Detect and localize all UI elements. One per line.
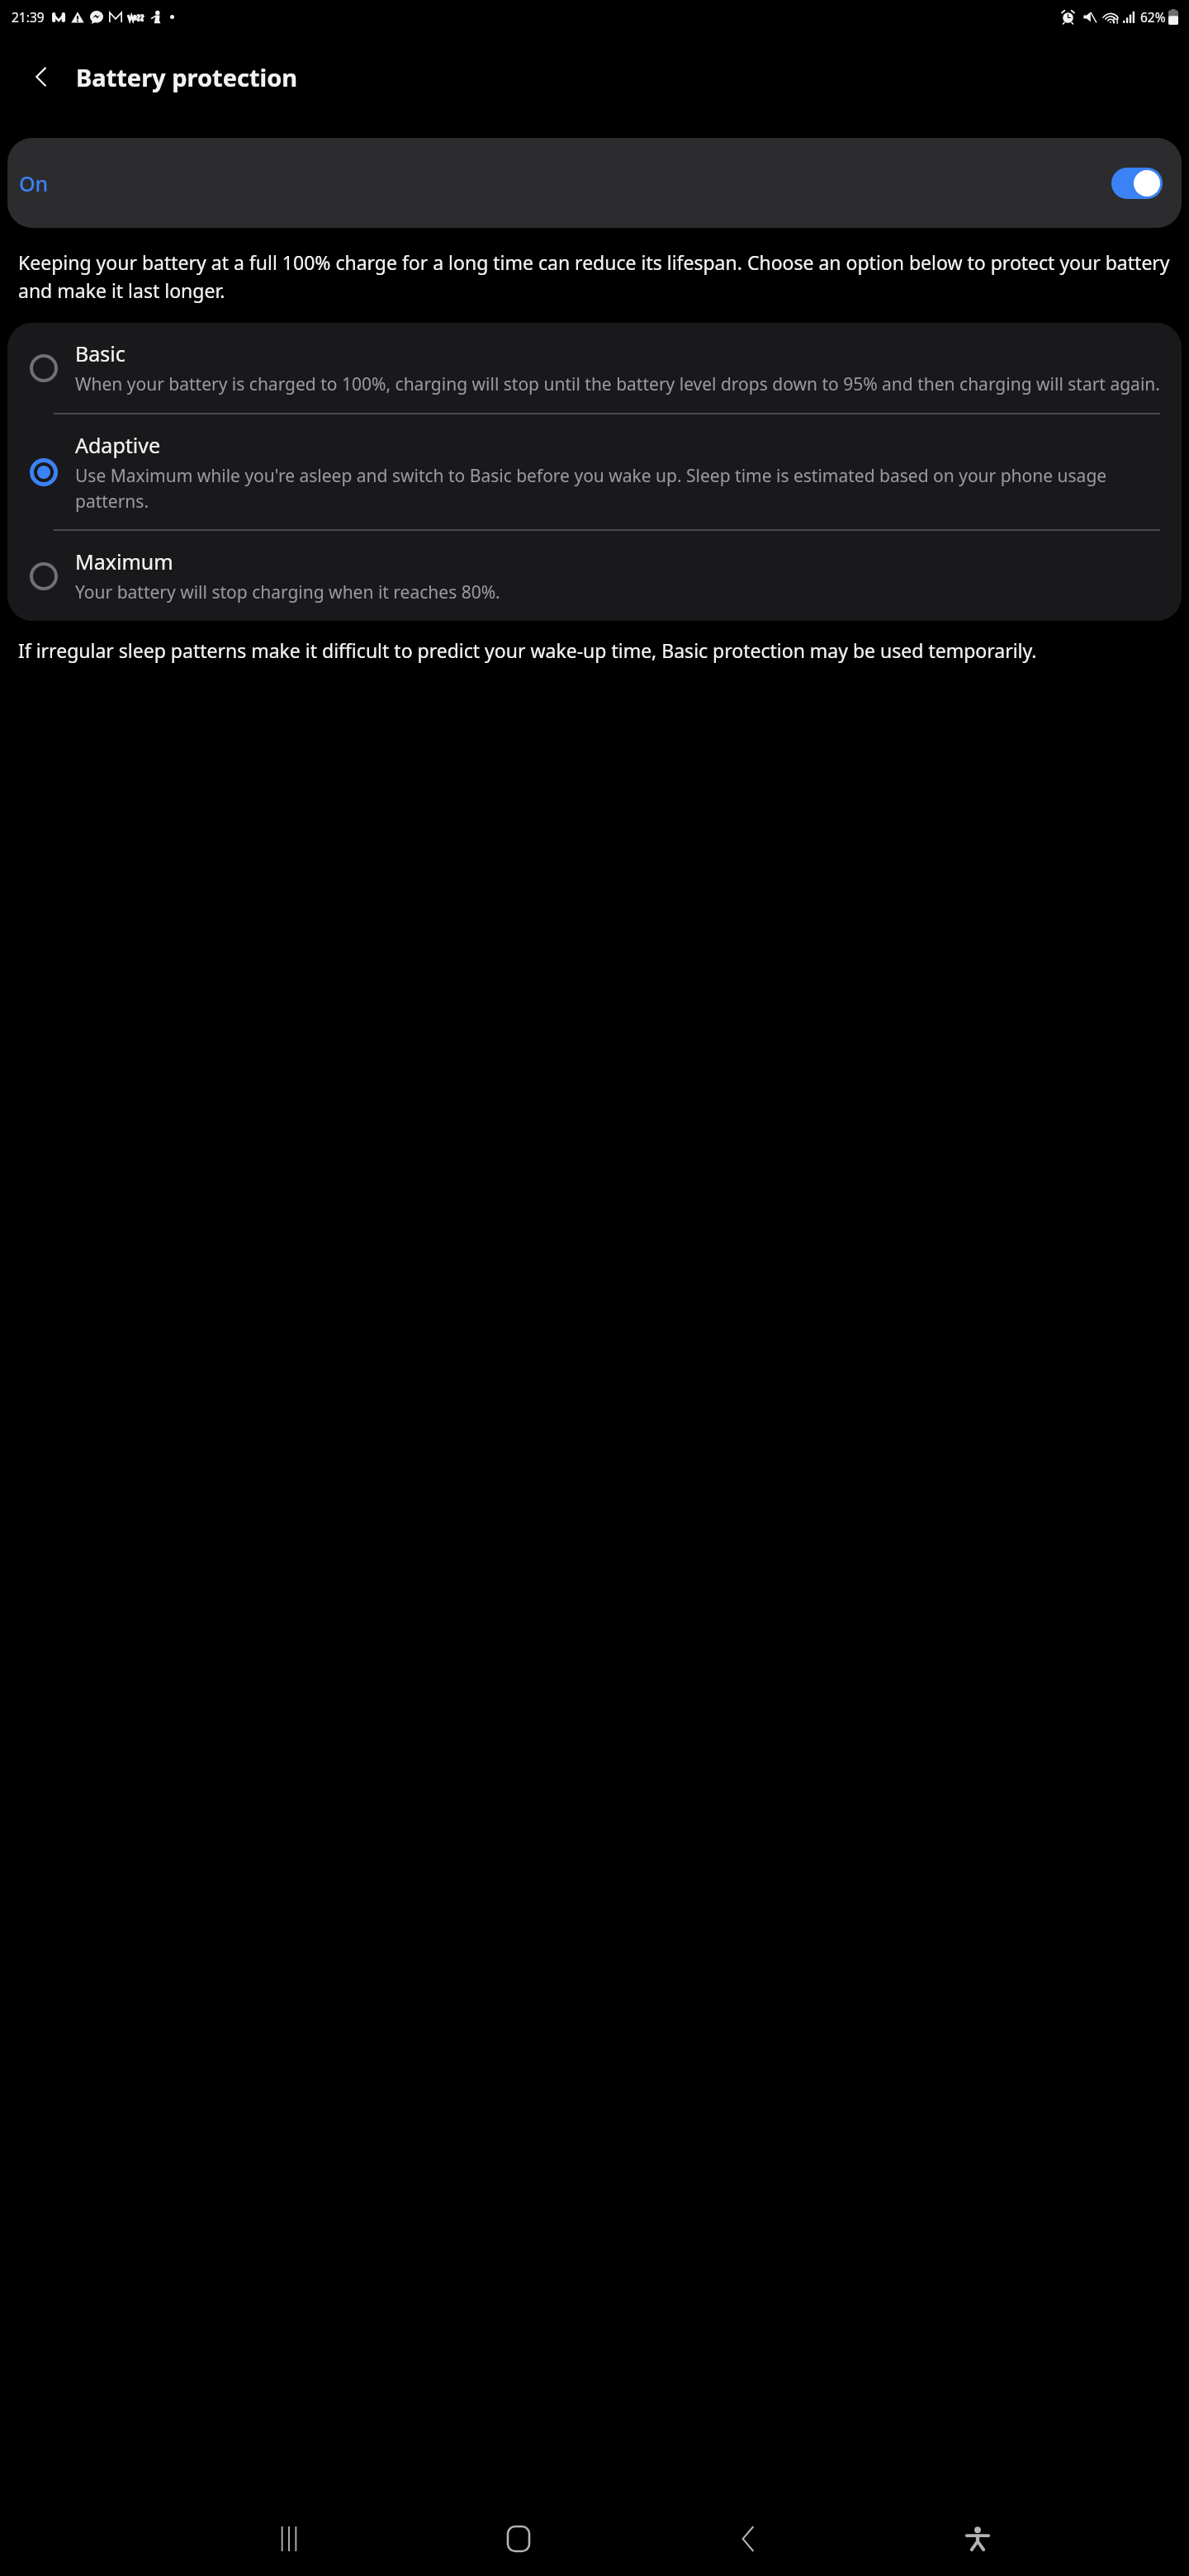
button[interactable]: Battery protection toggle — [1111, 168, 1163, 199]
staticText: When your battery is charged to 100%, ch… — [75, 372, 1160, 396]
staticText: Battery protection — [76, 61, 298, 93]
button[interactable]: On — [7, 138, 1182, 228]
button[interactable]: Back — [18, 54, 64, 100]
button[interactable]: Basic — [7, 323, 1182, 413]
staticText: Use Maximum while you're asleep and swit… — [75, 464, 1162, 513]
staticText: 62% — [1140, 8, 1166, 26]
staticText: Your battery will stop charging when it … — [75, 580, 500, 604]
staticText: Maximum — [75, 547, 173, 575]
staticText: Basic — [75, 339, 126, 367]
button[interactable]: Recent apps — [258, 2507, 320, 2570]
staticText: On — [19, 169, 49, 197]
staticText: Adaptive — [75, 431, 161, 459]
staticText: Keeping your battery at a full 100% char… — [18, 249, 1171, 303]
button[interactable]: Adaptive — [7, 414, 1182, 529]
button[interactable]: Maximum — [7, 531, 1182, 621]
staticText: If irregular sleep patterns make it diff… — [18, 637, 1171, 663]
button[interactable]: Accessibility — [946, 2507, 1009, 2570]
button[interactable]: Back — [717, 2507, 779, 2570]
staticText: 21:39 — [12, 8, 45, 26]
button[interactable]: Home — [487, 2507, 550, 2570]
